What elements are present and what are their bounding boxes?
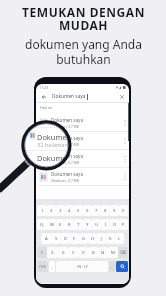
staticText: Dokumen saya [51, 153, 84, 159]
staticText: E [59, 222, 62, 228]
button[interactable]: M [108, 247, 118, 258]
staticText: B [92, 250, 95, 256]
button[interactable]: R [65, 219, 74, 230]
staticText: D [64, 236, 68, 242]
staticText: TEMUKAN DENGAN MUDAH [22, 4, 145, 34]
staticText: K [109, 236, 112, 242]
button[interactable]: Dokumen saya [36, 132, 129, 150]
button[interactable]: 3 [56, 205, 65, 216]
button[interactable]: W [47, 219, 56, 230]
staticText: ⌫ [120, 250, 126, 255]
button[interactable]: U [92, 219, 101, 230]
button[interactable]: 7 [92, 205, 101, 216]
staticText: F [73, 236, 76, 242]
staticText: X [62, 250, 65, 256]
button[interactable]: Dokumen saya [36, 114, 129, 132]
button[interactable]: 8 [101, 205, 110, 216]
staticText: 2halaman, 0.7 MB [51, 142, 79, 146]
button[interactable]: G [79, 233, 88, 244]
button[interactable]: Q [37, 219, 47, 230]
staticText: Dokumen saya [51, 171, 84, 177]
button[interactable]: ?123 [37, 261, 48, 272]
button[interactable]: B [88, 247, 98, 258]
staticText: H [91, 236, 95, 242]
staticText: Y [86, 222, 89, 228]
staticText: T [77, 222, 80, 228]
staticText: 3 [59, 208, 62, 214]
button[interactable]: Search [116, 261, 128, 272]
staticText: Dokumen [37, 153, 70, 163]
staticText: R [68, 222, 71, 228]
staticText: 2halaman, 0.7 MB [51, 178, 79, 182]
button[interactable]: 0 [119, 205, 128, 216]
staticText: Z [51, 250, 54, 256]
staticText: Dokumen saya [52, 93, 86, 100]
staticText: 6 [86, 208, 89, 214]
button[interactable]: X [58, 247, 68, 258]
staticText: Dokumen [37, 132, 70, 142]
button[interactable]: S [51, 233, 61, 244]
button[interactable]: Dokumen saya [36, 150, 129, 168]
staticText: Q [40, 222, 44, 228]
staticText: 5 [77, 208, 80, 214]
button[interactable]: N [98, 247, 108, 258]
button[interactable]: Clear [118, 93, 125, 100]
staticText: . [111, 264, 113, 269]
button[interactable]: E [56, 219, 65, 230]
staticText: W [50, 222, 54, 228]
button[interactable]: I [101, 219, 110, 230]
staticText: O [113, 222, 117, 228]
button[interactable]: 1 [37, 205, 47, 216]
button[interactable]: V [78, 247, 88, 258]
staticText: N [101, 250, 105, 256]
button[interactable]: 4 [65, 205, 74, 216]
button[interactable]: Z [47, 247, 58, 258]
button[interactable]: Shift [37, 247, 47, 258]
button[interactable]: J [97, 233, 106, 244]
staticText: 0 [122, 208, 125, 214]
staticText: 2halaman, 0.7 MB [51, 124, 79, 128]
button[interactable]: C [68, 247, 78, 258]
button[interactable]: A [41, 233, 51, 244]
staticText: 4 [68, 208, 71, 214]
staticText: 2 [50, 208, 53, 214]
button[interactable]: 6 [83, 205, 92, 216]
button[interactable]: 2 [47, 205, 56, 216]
button[interactable]: Back [40, 93, 47, 100]
button[interactable]: Dokumen saya [36, 168, 129, 186]
staticText: Dokumen saya [51, 117, 84, 123]
staticText: 32 halaman [37, 141, 68, 149]
button[interactable]: O [110, 219, 119, 230]
button[interactable]: D [61, 233, 70, 244]
button[interactable]: Backspace [118, 247, 128, 258]
button[interactable]: , [49, 261, 55, 272]
staticText: G [82, 236, 86, 242]
button[interactable]: P [119, 219, 128, 230]
staticText: L [118, 236, 121, 242]
staticText: 8 [104, 208, 107, 214]
staticText: EN • LP [77, 265, 88, 269]
staticText: ⇧ [40, 250, 44, 255]
button[interactable]: 9 [110, 205, 119, 216]
staticText: V [82, 250, 85, 256]
staticText: I [105, 222, 107, 228]
staticText: S [55, 236, 58, 242]
button[interactable]: K [106, 233, 115, 244]
staticText: P [122, 222, 125, 228]
staticText: C [72, 250, 75, 256]
staticText: Hari ini [40, 105, 53, 110]
staticText: U [95, 222, 99, 228]
button[interactable]: 5 [74, 205, 83, 216]
button[interactable]: EN • LP [56, 261, 108, 272]
button[interactable]: T [74, 219, 83, 230]
staticText: 9 [113, 208, 116, 214]
staticText: 11:23 [39, 85, 49, 90]
staticText: ?123 [39, 265, 46, 269]
button[interactable]: F [70, 233, 79, 244]
button[interactable]: H [88, 233, 97, 244]
button[interactable]: L [115, 233, 124, 244]
staticText: 7 [95, 208, 98, 214]
button[interactable]: . [109, 261, 115, 272]
staticText: J [101, 236, 103, 242]
button[interactable]: Y [83, 219, 92, 230]
